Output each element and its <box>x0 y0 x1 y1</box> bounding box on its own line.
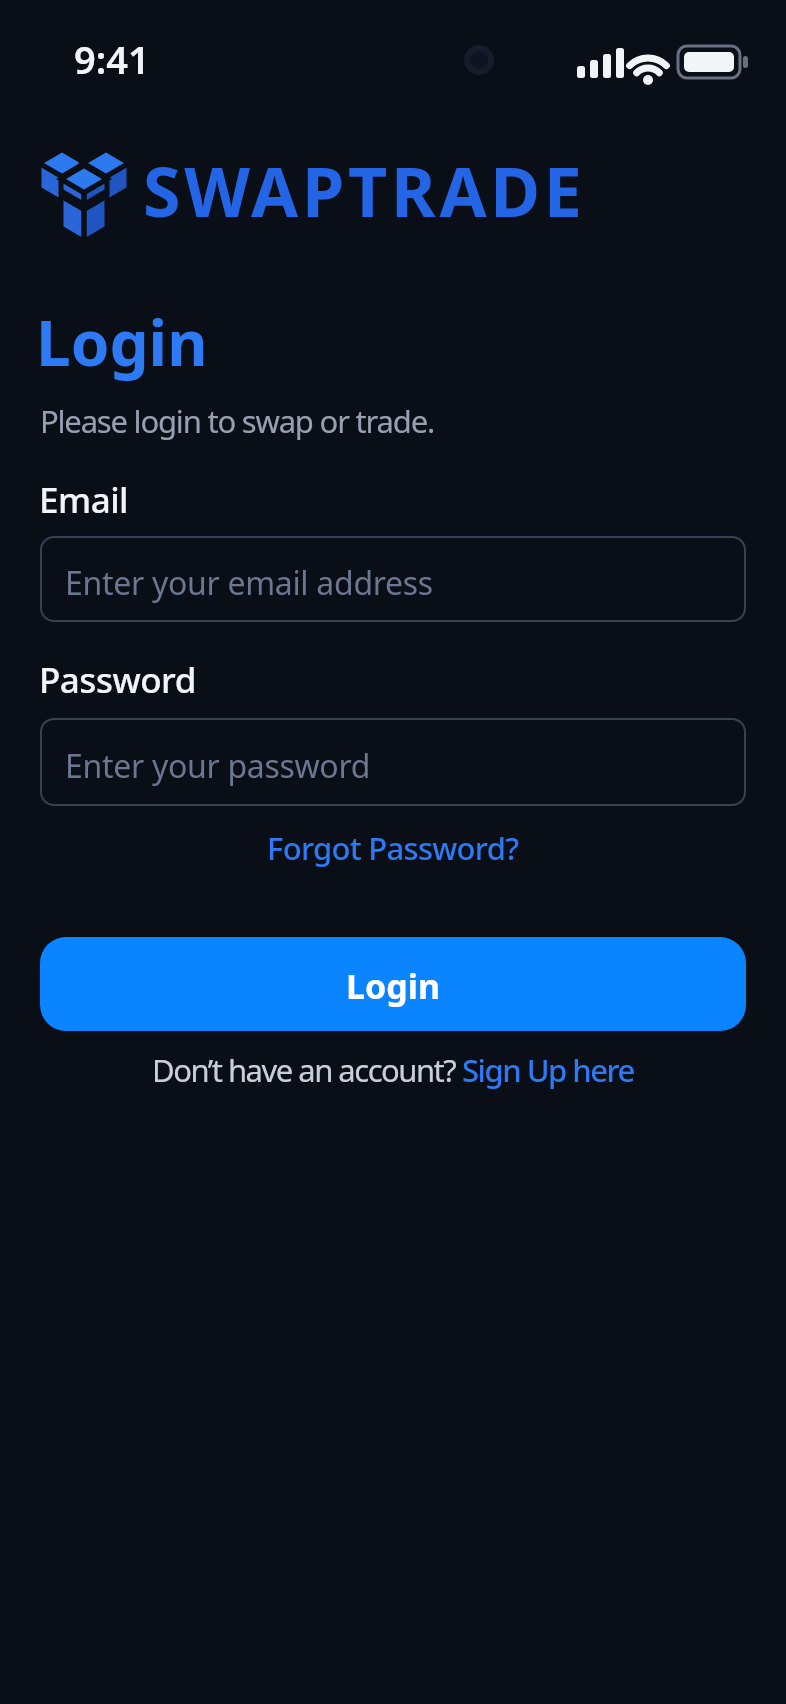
staticText: Please login to swap or trade. <box>40 400 435 442</box>
staticText: Login <box>36 300 208 384</box>
staticText: Don’t have an account? <box>152 1049 462 1091</box>
staticText: Password <box>39 656 196 704</box>
staticText: Email <box>39 476 129 524</box>
staticText: Login <box>346 963 441 1009</box>
staticText: Sign Up here <box>462 1049 634 1091</box>
staticText: SWAPTRADE <box>143 144 586 237</box>
staticText: Forgot Password? <box>267 827 519 869</box>
staticText: 9:41 <box>74 33 150 85</box>
staticText: Enter your email address <box>65 561 433 605</box>
staticText: Enter your password <box>65 744 371 788</box>
